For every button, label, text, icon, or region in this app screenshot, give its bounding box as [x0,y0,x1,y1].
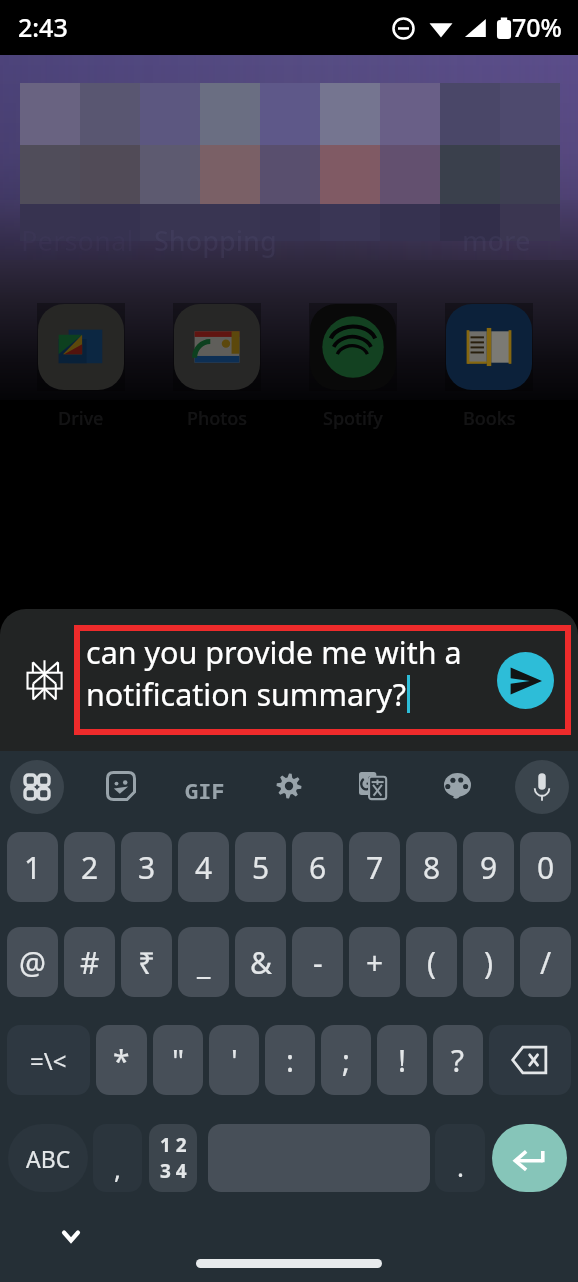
button[interactable] [445,303,533,391]
button[interactable]: & [235,927,286,997]
button[interactable]: Stickers [98,763,144,809]
button[interactable]: =\< [7,1025,90,1095]
staticText: + [366,942,384,983]
staticText: " [172,1040,185,1081]
button[interactable]: 1 [7,832,58,902]
staticText: @ [19,942,46,983]
button[interactable]: 2 [64,832,115,902]
button[interactable]: - [292,927,343,997]
button[interactable]: ! [377,1025,427,1095]
button[interactable]: # [64,927,115,997]
staticText: ₹ [138,942,156,983]
button[interactable]: ₹ [121,927,172,997]
staticText: Shopping [154,222,277,259]
staticText: 1 2 [160,1132,187,1158]
button[interactable]: Themes [434,763,480,809]
button[interactable]: ( [406,927,457,997]
staticText: ( [427,942,436,983]
staticText: 2 [81,847,99,888]
staticText: ) [484,942,493,983]
button[interactable]: Space [208,1124,430,1192]
button[interactable]: 5 [235,832,286,902]
button[interactable]: Backspace [489,1025,571,1095]
staticText: # [80,942,100,983]
staticText: : [286,1040,295,1081]
staticText: 6 [309,847,327,888]
button[interactable]: Settings [266,763,312,809]
staticText: 3 [138,847,156,888]
staticText: can you provide me with a [86,631,462,673]
button[interactable]: Voice input [515,760,569,814]
button[interactable]: 7 [349,832,400,902]
staticText: Books [463,406,516,431]
staticText: 0 [537,847,555,888]
staticText: 9 [480,847,498,888]
staticText: Drive [58,406,104,431]
button[interactable]: : [265,1025,315,1095]
staticText: _ [197,942,211,983]
staticText: =\< [30,1044,67,1077]
button[interactable]: ? [433,1025,483,1095]
staticText: - [313,942,323,983]
button[interactable]: 0 [520,832,571,902]
button[interactable]: 3 [121,832,172,902]
staticText: . [457,1149,464,1184]
staticText: 1 [24,847,42,888]
button[interactable]: Assistant [17,650,71,710]
button[interactable] [37,303,125,391]
staticText: 2:43 [18,10,68,44]
staticText: * [113,1040,130,1081]
button[interactable]: can you provide me with a [77,628,568,732]
staticText: Photos [187,406,247,431]
button[interactable]: ; [321,1025,371,1095]
staticText: 70% [512,10,562,44]
staticText: 4 [195,847,213,888]
button[interactable]: 8 [406,832,457,902]
button[interactable] [173,303,261,391]
staticText: , [114,1151,121,1186]
button[interactable]: Apps [10,760,64,814]
button[interactable]: * [96,1025,147,1095]
button[interactable]: 4 [178,832,229,902]
staticText: ? [451,1040,465,1081]
button[interactable]: Hide keyboard [49,1214,93,1258]
button[interactable]: + [349,927,400,997]
button[interactable] [309,303,397,391]
staticText: / [540,942,552,983]
staticText: 5 [252,847,270,888]
button[interactable]: 9 [463,832,514,902]
staticText: ; [342,1040,351,1081]
staticText: more [462,222,531,259]
button[interactable]: ' [209,1025,259,1095]
button[interactable]: . [435,1124,485,1192]
button[interactable]: " [153,1025,203,1095]
button[interactable]: _ [178,927,229,997]
staticText: 7 [366,847,384,888]
staticText: ' [231,1040,238,1081]
staticText: GIF [185,775,225,799]
button[interactable]: 1 2 [149,1124,197,1192]
button[interactable]: ) [463,927,514,997]
staticText: Personal [21,222,134,259]
staticText: & [250,942,272,983]
button[interactable]: , [93,1124,142,1192]
button[interactable]: @ [7,927,58,997]
staticText: ABC [26,1143,71,1174]
button[interactable]: 6 [292,832,343,902]
button[interactable]: GIF [185,775,229,799]
staticText: Spotify [323,406,383,431]
button[interactable]: Send [497,652,554,709]
staticText: 8 [423,847,441,888]
button[interactable]: Enter [492,1124,567,1192]
staticText: 3 4 [160,1158,187,1184]
staticText: notification summary? [86,673,407,715]
button[interactable]: Translate [350,763,396,809]
staticText: ! [398,1040,407,1081]
button[interactable]: ABC [8,1124,88,1192]
button[interactable]: / [520,927,571,997]
